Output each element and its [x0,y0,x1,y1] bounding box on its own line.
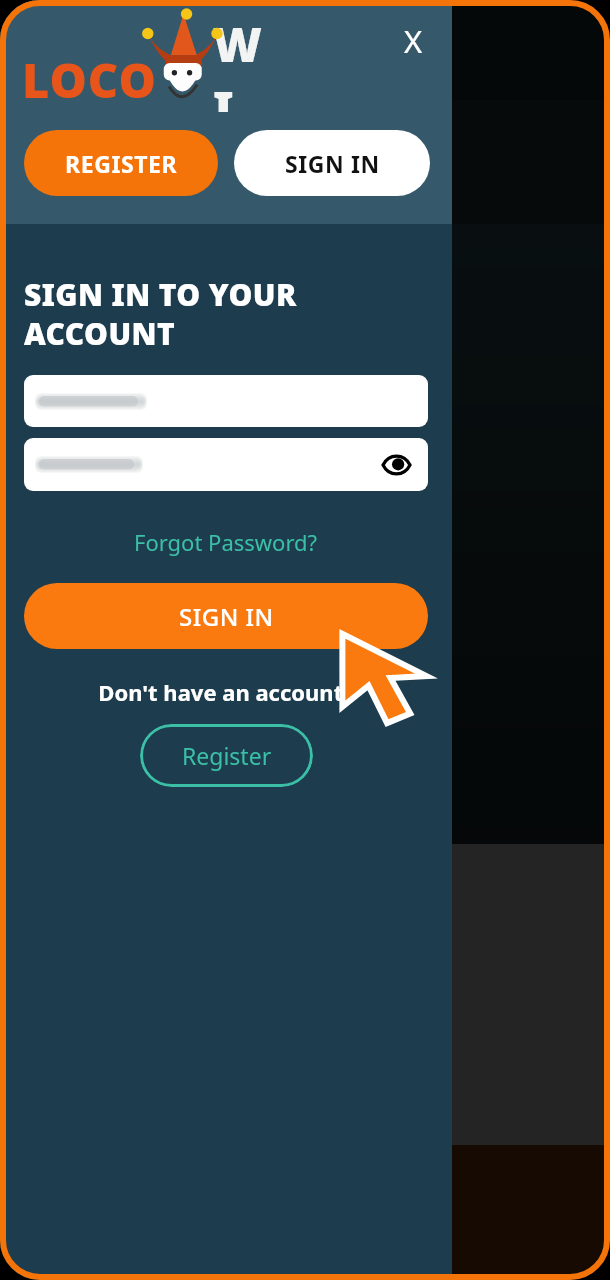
staticText: REGISTER [65,148,178,179]
button[interactable]: Forgot Password? [124,523,328,561]
button[interactable]: SIGN IN [234,130,430,196]
staticText: Don't have an account? [0,677,452,707]
button[interactable]: Show password [374,443,418,487]
staticText: Fre [126,633,175,675]
button[interactable]: Show password [24,438,428,491]
button[interactable]: Register [140,724,313,787]
button[interactable] [24,375,428,427]
staticText: W [100,274,175,372]
staticText: Up [126,483,170,525]
staticText: CASINO [347,176,419,199]
staticText: SIGN IN TO YOUR ACCOUNT [24,274,297,353]
staticText: Forgot Password? [134,527,318,557]
staticText: SIGN IN [179,600,274,633]
staticText: WIN [213,12,270,112]
button[interactable]: SIGN IN [24,583,428,649]
staticText: Lev [126,533,179,575]
staticText: Register [182,740,272,771]
button[interactable]: REGISTER [24,130,218,196]
staticText: SIGN IN [285,148,380,179]
staticText: LOCOWIN [80,27,253,73]
staticText: X [404,20,423,62]
button[interactable]: Close [386,14,440,68]
staticText: LOCO [22,48,157,112]
